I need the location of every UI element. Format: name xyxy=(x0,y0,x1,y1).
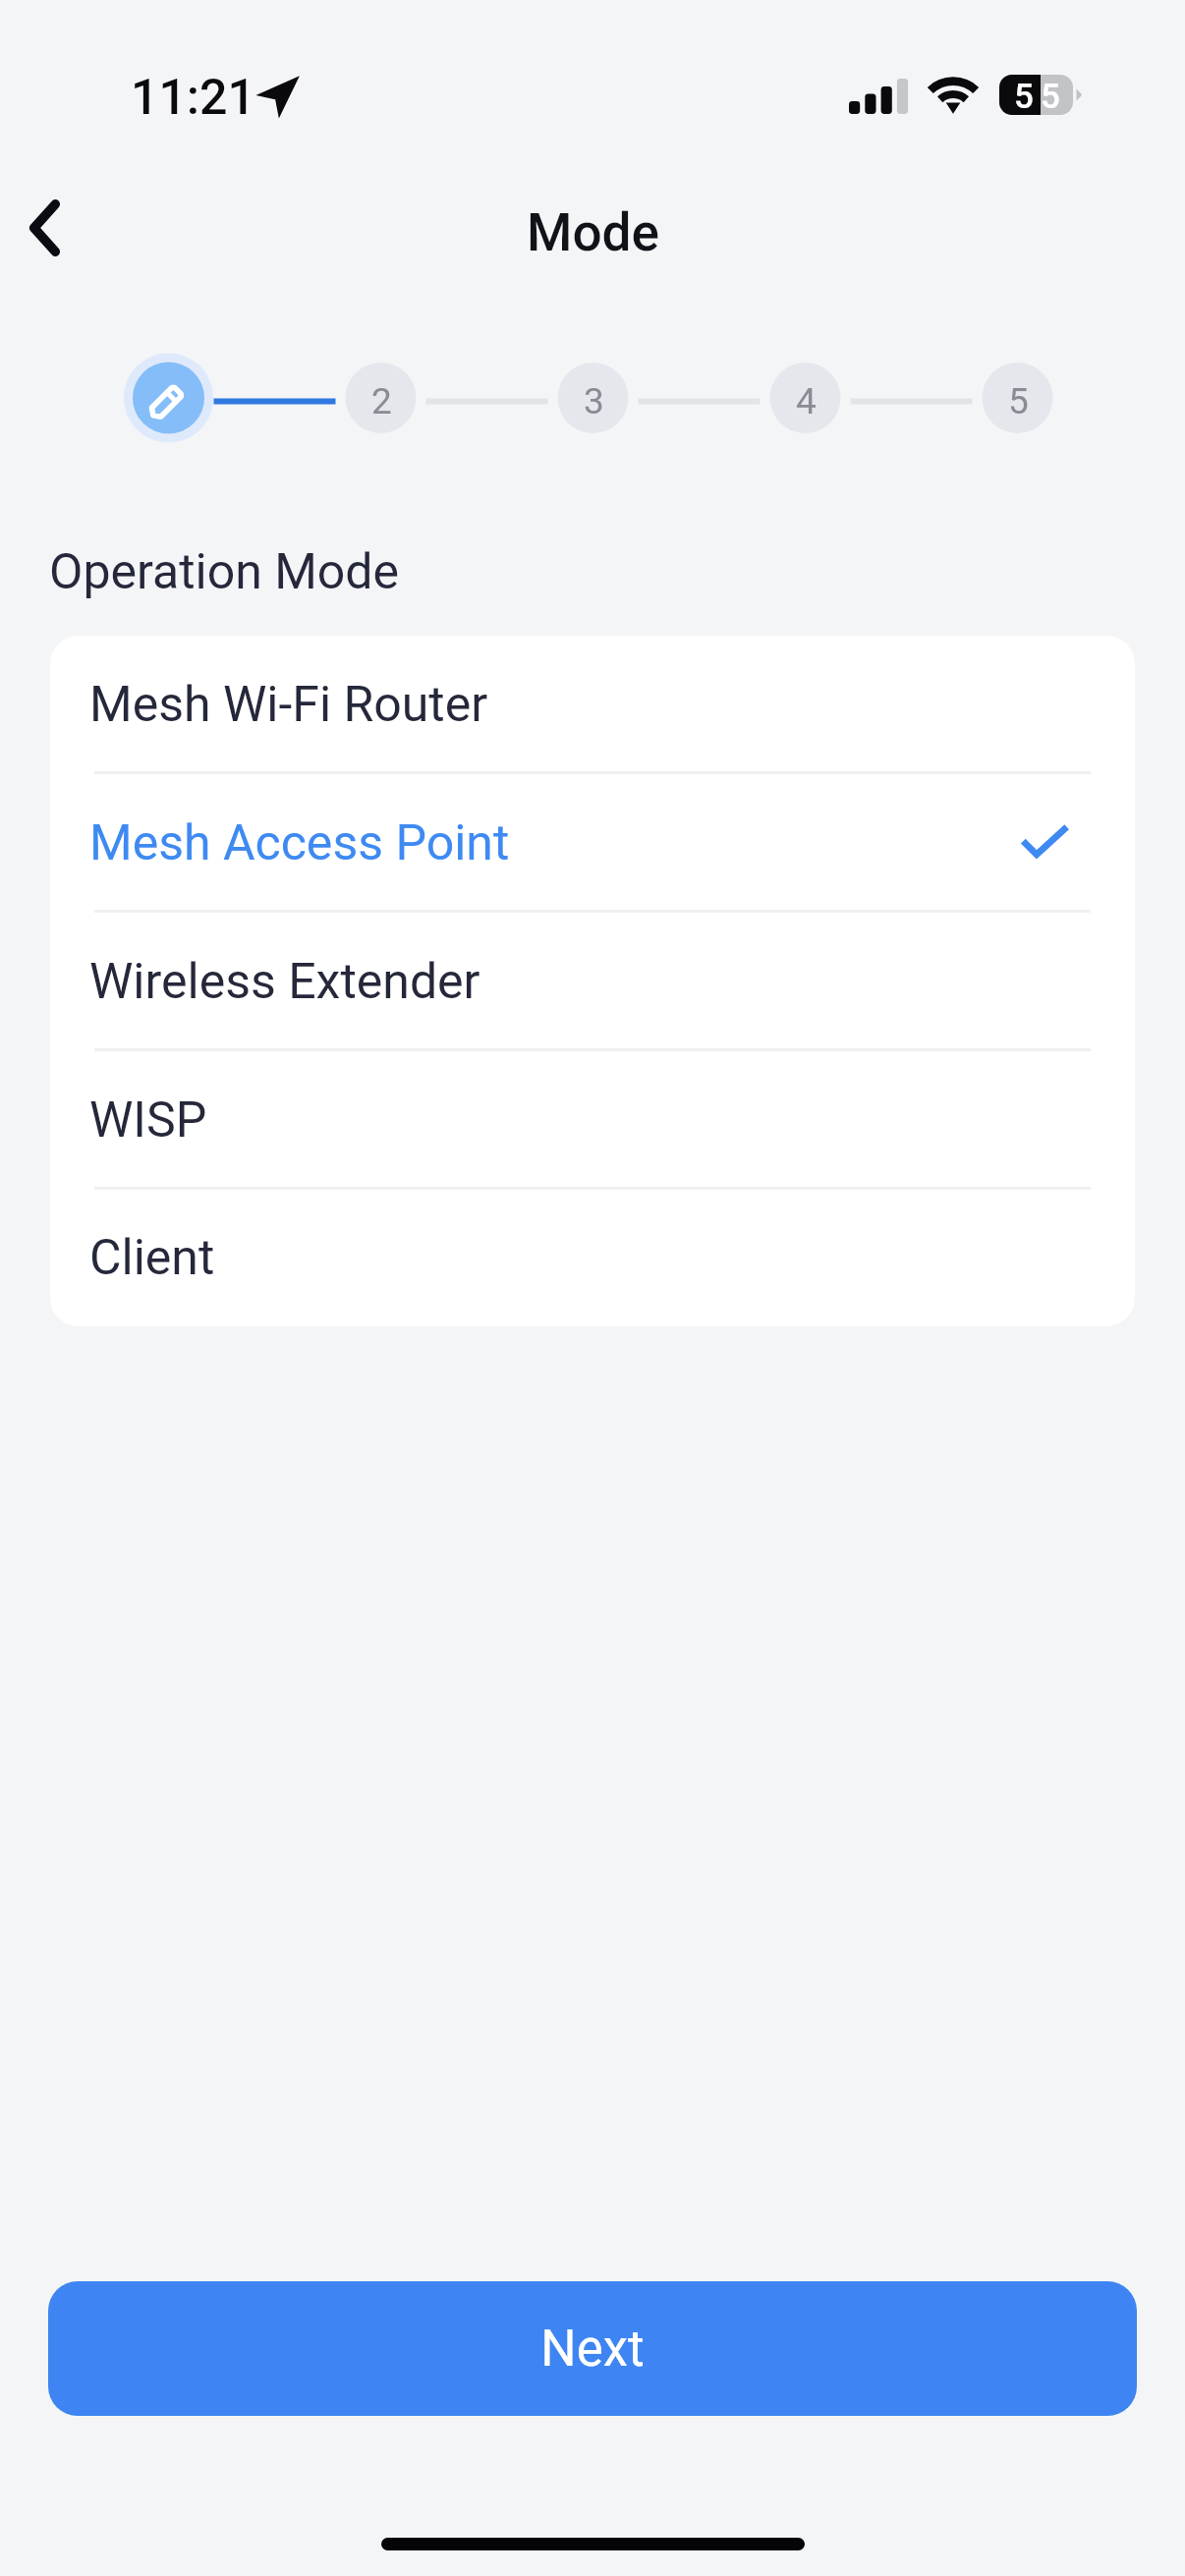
button[interactable]: Mesh Wi-Fi Router xyxy=(50,636,1135,774)
button[interactable]: Next xyxy=(48,2281,1137,2416)
staticText: 5 xyxy=(1008,380,1029,422)
button[interactable]: WISP xyxy=(50,1051,1135,1190)
staticText: Client xyxy=(89,1229,215,1287)
staticText: 2 xyxy=(371,380,392,422)
button[interactable]: Wireless Extender xyxy=(50,913,1135,1051)
staticText: Mode xyxy=(527,202,659,263)
staticText: Mesh Wi-Fi Router xyxy=(89,676,488,734)
staticText: Mesh Access Point xyxy=(89,814,510,872)
staticText: 11:21 xyxy=(131,69,255,127)
button[interactable]: Client xyxy=(50,1190,1135,1326)
staticText: 55 xyxy=(1014,77,1067,117)
button[interactable]: Mesh Access Point xyxy=(50,774,1135,913)
staticText: 4 xyxy=(796,380,817,422)
staticText: 3 xyxy=(584,380,604,422)
staticText: Next xyxy=(540,2320,645,2379)
staticText: Wireless Extender xyxy=(89,953,480,1011)
staticText: Operation Mode xyxy=(49,543,400,601)
staticText: WISP xyxy=(89,1092,207,1149)
button[interactable]: Back xyxy=(0,177,106,281)
